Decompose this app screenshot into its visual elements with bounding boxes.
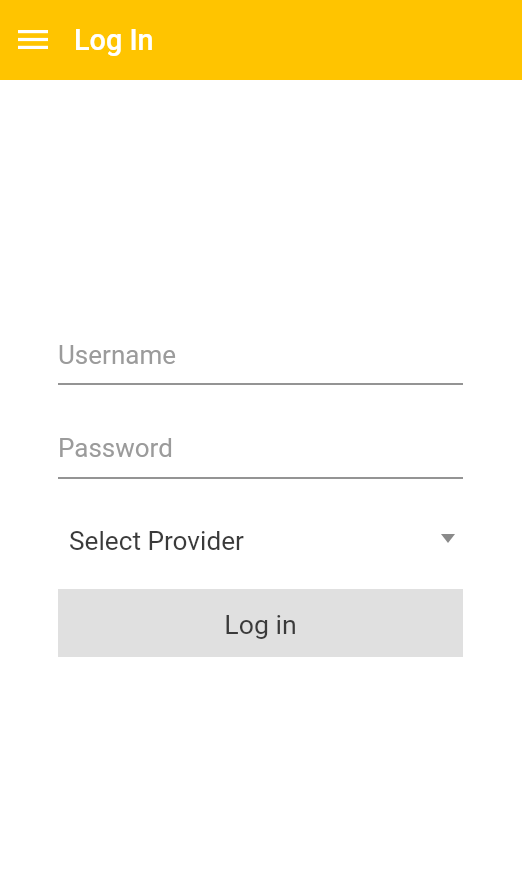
staticText: Log in <box>224 609 297 640</box>
button[interactable]: Password <box>58 433 463 467</box>
staticText: Password <box>58 433 173 463</box>
button[interactable]: Select Provider <box>58 516 463 564</box>
staticText: Select Provider <box>69 526 244 557</box>
staticText: Log In <box>74 23 154 57</box>
button[interactable]: Username <box>58 340 463 374</box>
button[interactable]: Open navigation drawer <box>9 16 57 64</box>
button[interactable]: Log in <box>58 589 463 657</box>
staticText: Username <box>58 340 176 370</box>
